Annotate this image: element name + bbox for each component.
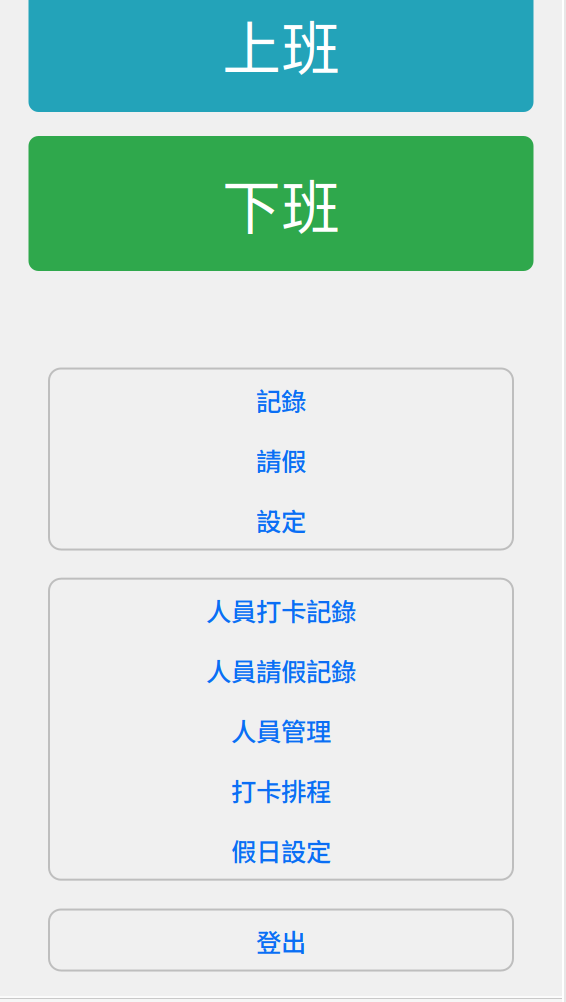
staticText: 人員管理 [231,712,331,749]
staticText: 上班 [222,2,340,87]
staticText: 設定 [256,502,306,538]
staticText: 記錄 [256,382,306,418]
button[interactable]: 記錄 [50,369,511,429]
button[interactable]: 假日設定 [50,819,511,879]
button[interactable]: 登出 [50,910,511,970]
button[interactable]: 人員請假記錄 [50,639,511,699]
staticText: 下班 [222,161,340,246]
button[interactable]: 下班 [28,136,533,271]
button[interactable]: 人員管理 [50,699,511,759]
staticText: 打卡排程 [231,772,331,809]
button[interactable]: 打卡排程 [50,759,511,819]
button[interactable]: 人員打卡記錄 [50,579,511,639]
button[interactable]: 上班 [28,0,533,112]
staticText: 人員打卡記錄 [206,592,356,629]
staticText: 假日設定 [231,832,331,869]
staticText: 請假 [256,442,306,478]
button[interactable]: 設定 [50,489,511,549]
staticText: 人員請假記錄 [206,652,356,689]
staticText: 登出 [256,923,306,959]
button[interactable]: 請假 [50,429,511,489]
